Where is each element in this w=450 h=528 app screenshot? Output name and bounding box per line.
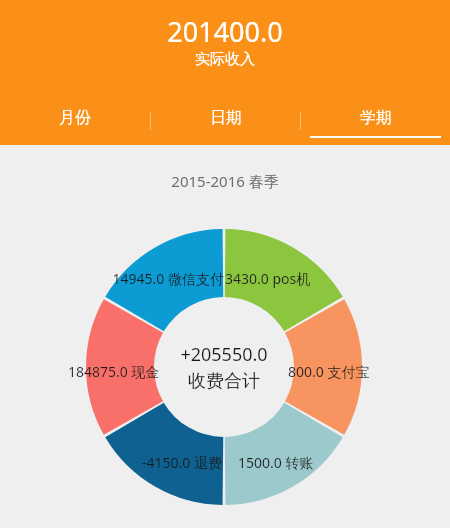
button[interactable]: 学期 bbox=[301, 97, 450, 145]
button[interactable]: 月份 bbox=[0, 97, 150, 145]
button[interactable]: 14945.0 微信支付 bbox=[108, 269, 224, 288]
staticText: 2015-2016 春季 bbox=[0, 171, 450, 191]
staticText: 实际收入 bbox=[0, 50, 450, 69]
staticText: 收费合计 bbox=[188, 370, 260, 393]
button[interactable]: 1500.0 转账 bbox=[238, 453, 334, 472]
staticText: 1500.0 转账 bbox=[238, 453, 334, 472]
button[interactable]: 日期 bbox=[151, 97, 300, 145]
staticText: 184875.0 现金 bbox=[68, 362, 160, 381]
staticText: 学期 bbox=[360, 108, 392, 128]
staticText: 14945.0 微信支付 bbox=[108, 269, 224, 288]
button[interactable]: 800.0 支付宝 bbox=[288, 362, 380, 381]
button[interactable]: 184875.0 现金 bbox=[68, 362, 160, 381]
staticText: 日期 bbox=[210, 108, 242, 128]
staticText: +205550.0 bbox=[180, 342, 268, 367]
staticText: 3430.0 pos机 bbox=[225, 269, 341, 288]
staticText: 800.0 支付宝 bbox=[288, 362, 380, 381]
staticText: -4150.0 退费 bbox=[126, 453, 222, 472]
button[interactable]: 3430.0 pos机 bbox=[225, 269, 341, 288]
staticText: 201400.0 bbox=[0, 13, 450, 50]
staticText: 月份 bbox=[59, 108, 91, 128]
button[interactable]: -4150.0 退费 bbox=[126, 453, 222, 472]
